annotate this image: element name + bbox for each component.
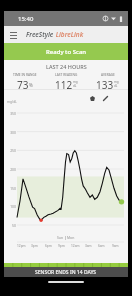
staticText: 9am: [112, 244, 119, 248]
staticText: FreeStyle: [26, 30, 54, 39]
button[interactable]: AVERAGE: [87, 73, 128, 89]
staticText: dL: [73, 84, 77, 88]
staticText: TIME IN RANGE: [13, 73, 37, 77]
staticText: Sun: [57, 235, 64, 240]
button[interactable]: Add note: [101, 94, 110, 103]
staticText: 3pm: [31, 244, 38, 248]
staticText: dL: [114, 84, 118, 88]
staticText: 12am: [71, 244, 80, 248]
staticText: %: [29, 82, 33, 88]
staticText: 6pm: [45, 244, 52, 248]
button[interactable]: Ready to Scan: [4, 43, 128, 60]
staticText: 73: [17, 78, 29, 89]
staticText: LAST READING: [55, 73, 78, 77]
staticText: 12pm: [17, 244, 26, 248]
staticText: SENSOR ENDS IN 14 DAYS: [35, 269, 97, 276]
staticText: 350: [10, 111, 16, 116]
staticText: LibreLink: [54, 30, 84, 39]
staticText: LAST 24 HOURS: [46, 63, 87, 70]
button[interactable]: TIME IN RANGE: [4, 73, 46, 89]
staticText: 112: [55, 78, 73, 89]
staticText: 133: [96, 78, 114, 89]
staticText: 50: [12, 223, 16, 228]
button[interactable]: Open navigation menu: [4, 26, 22, 43]
button[interactable]: SENSOR ENDS IN 14 DAYS: [4, 267, 128, 277]
staticText: 3am: [85, 244, 92, 248]
staticText: 100: [10, 204, 16, 209]
staticText: Ready to Scan: [46, 48, 87, 56]
staticText: 250: [10, 148, 16, 153]
staticText: 6am: [98, 244, 105, 248]
staticText: Mon: [67, 235, 75, 240]
button[interactable]: LAST READING: [46, 73, 87, 89]
staticText: AVERAGE: [101, 73, 115, 77]
staticText: mg: [73, 80, 78, 84]
staticText: 15:40: [18, 15, 34, 23]
staticText: 9pm: [58, 244, 65, 248]
staticText: mg/dL: [7, 100, 17, 104]
staticText: 200: [10, 167, 16, 172]
button[interactable]: Log food: [88, 94, 97, 103]
staticText: 300: [10, 130, 16, 135]
staticText: mg: [114, 80, 119, 84]
staticText: 150: [10, 186, 16, 191]
